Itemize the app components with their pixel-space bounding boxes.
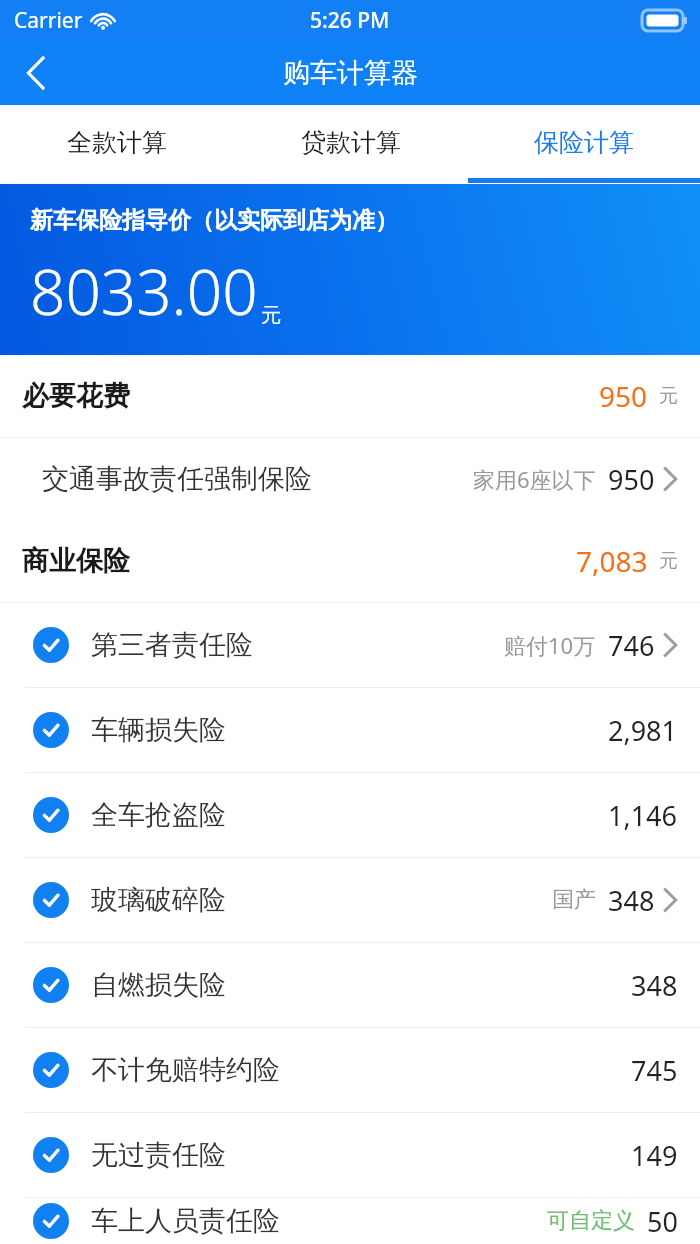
staticText: 全车抢盗险 <box>91 798 226 832</box>
staticText: 无过责任险 <box>91 1138 226 1172</box>
button[interactable]: 无过责任险 <box>0 1113 700 1197</box>
button[interactable]: Back <box>0 41 72 105</box>
staticText: 不计免赔特约险 <box>91 1053 280 1087</box>
staticText: 贷款计算 <box>301 127 401 158</box>
staticText: 必要花费 <box>22 379 130 413</box>
button[interactable]: 车辆损失险 <box>0 688 700 772</box>
button[interactable]: 保险计算 <box>467 105 700 184</box>
button[interactable]: 全款计算 <box>0 105 234 184</box>
staticText: 车辆损失险 <box>91 713 226 747</box>
staticText: 赔付10万 <box>504 630 596 660</box>
staticText: 第三者责任险 <box>91 628 253 662</box>
staticText: 5:26 PM <box>310 6 390 35</box>
staticText: 149 <box>631 1137 678 1174</box>
staticText: 745 <box>631 1052 678 1089</box>
button[interactable]: 交通事故责任强制保险 <box>0 438 700 520</box>
staticText: Carrier <box>14 6 83 35</box>
button[interactable]: 第三者责任险 <box>0 603 700 687</box>
staticText: 50 <box>647 1203 678 1240</box>
staticText: 可自定义 <box>547 1207 635 1235</box>
staticText: 950 <box>608 461 655 498</box>
button[interactable]: 贷款计算 <box>234 105 467 184</box>
staticText: 家用6座以下 <box>473 464 596 494</box>
button[interactable]: 全车抢盗险 <box>0 773 700 857</box>
staticText: 自燃损失险 <box>91 968 226 1002</box>
staticText: 348 <box>631 967 678 1004</box>
staticText: 玻璃破碎险 <box>91 883 226 917</box>
staticText: 购车计算器 <box>283 56 418 90</box>
staticText: 新车保险指导价（以实际到店为准） <box>30 206 398 235</box>
staticText: 元 <box>261 303 281 328</box>
button[interactable]: 玻璃破碎险 <box>0 858 700 942</box>
button[interactable]: 自燃损失险 <box>0 943 700 1027</box>
staticText: 8033.00 <box>30 249 258 333</box>
button[interactable]: 不计免赔特约险 <box>0 1028 700 1112</box>
staticText: 国产 <box>552 886 596 914</box>
staticText: 348 <box>608 882 655 919</box>
staticText: 950 <box>599 377 648 415</box>
staticText: 交通事故责任强制保险 <box>42 462 312 496</box>
staticText: 元 <box>659 549 678 573</box>
button[interactable]: 车上人员责任险 <box>0 1198 700 1244</box>
staticText: 保险计算 <box>534 127 634 158</box>
staticText: 7,083 <box>576 542 648 580</box>
staticText: 2,981 <box>608 712 678 749</box>
staticText: 746 <box>608 627 655 664</box>
staticText: 1,146 <box>608 797 678 834</box>
staticText: 元 <box>659 384 678 408</box>
staticText: 商业保险 <box>22 544 130 578</box>
staticText: 车上人员责任险 <box>91 1204 280 1238</box>
staticText: 全款计算 <box>67 127 167 158</box>
